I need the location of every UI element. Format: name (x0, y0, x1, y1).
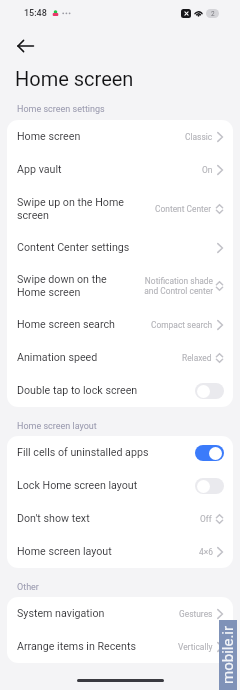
staticText: Home screen (17, 130, 81, 143)
staticText: Home screen layout (17, 421, 97, 432)
staticText: Home screen search (17, 318, 115, 331)
staticText: Fill cells of uninstalled apps (17, 446, 149, 459)
button[interactable]: Content Center settings (7, 231, 233, 264)
button[interactable]: Arrange items in Recents (7, 630, 233, 663)
staticText: Content Center (155, 204, 212, 214)
staticText: Home screen (15, 67, 134, 90)
button[interactable]: Lock Home screen layout (7, 469, 233, 502)
staticText: Compact search (151, 320, 213, 330)
staticText: Swipe up on the Home screen (17, 196, 124, 222)
staticText: Animation speed (17, 351, 98, 364)
button[interactable]: Off (195, 478, 224, 494)
staticText: mobile.ir (219, 625, 237, 684)
staticText: Home screen settings (17, 104, 105, 115)
staticText: 4×6 (199, 547, 213, 557)
staticText: Relaxed (182, 353, 212, 363)
button[interactable]: Don't show text (7, 502, 233, 535)
staticText: 2 (211, 10, 215, 18)
staticText: Classic (185, 132, 213, 142)
staticText: Content Center settings (17, 241, 130, 254)
button[interactable]: System navigation (7, 597, 233, 630)
button[interactable]: Swipe down on the Home screen (7, 264, 233, 308)
staticText: App vault (17, 163, 62, 176)
staticText: Gestures (179, 609, 213, 619)
staticText: and Control center (144, 286, 213, 296)
staticText: Other (17, 582, 39, 593)
button[interactable]: On (195, 445, 224, 461)
staticText: Double tap to lock screen (17, 384, 138, 397)
button[interactable]: Animation speed (7, 341, 233, 374)
staticText: Don't show text (17, 512, 90, 525)
staticText: Notification shade (144, 276, 213, 286)
staticText: Swipe down on the Home screen (17, 273, 107, 299)
staticText: Lock Home screen layout (17, 479, 138, 492)
staticText: System navigation (17, 607, 105, 620)
button[interactable]: Home screen search (7, 308, 233, 341)
button[interactable]: Swipe up on the Home screen (7, 186, 233, 231)
button[interactable]: Double tap to lock screen (7, 374, 233, 407)
staticText: Arrange items in Recents (17, 640, 136, 653)
staticText: Home screen layout (17, 545, 112, 558)
button[interactable]: Off (195, 383, 224, 399)
button[interactable]: App vault (7, 153, 233, 186)
button[interactable]: Fill cells of uninstalled apps (7, 436, 233, 469)
button[interactable]: Back (11, 32, 39, 60)
staticText: Vertically (178, 642, 213, 652)
staticText: On (202, 165, 213, 175)
button[interactable]: Home screen (7, 120, 233, 153)
staticText: Off (200, 514, 212, 524)
staticText: 15:48 (24, 8, 47, 19)
button[interactable]: Home screen layout (7, 535, 233, 568)
